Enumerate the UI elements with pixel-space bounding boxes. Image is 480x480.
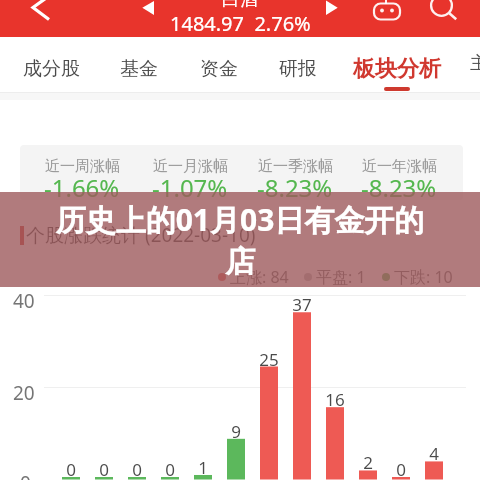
staticText: 上涨: 84	[230, 266, 289, 288]
staticText: 9	[231, 420, 241, 443]
staticText: 4	[429, 442, 439, 465]
staticText: 20	[13, 380, 35, 406]
staticText: 近一年涨幅	[362, 157, 437, 176]
button[interactable]: Next	[318, 0, 350, 22]
staticText: 0	[396, 458, 406, 480]
button[interactable]: 下跌: 10	[382, 266, 453, 288]
staticText: 近一月涨幅	[153, 157, 228, 176]
staticText: 1	[198, 456, 208, 479]
staticText: 主	[470, 52, 480, 75]
staticText: 研报	[279, 57, 317, 81]
staticText: 成分股	[23, 57, 80, 81]
button[interactable]: 上涨: 84	[218, 266, 289, 288]
staticText: 近一周涨幅	[45, 157, 120, 176]
staticText: 白酒	[222, 0, 258, 11]
button[interactable]: 成分股	[9, 37, 93, 93]
staticText: 1484.97 2.76%	[170, 10, 311, 37]
staticText: -1.07%	[152, 171, 228, 204]
button[interactable]: Previous	[132, 0, 164, 22]
staticText: 板块分析	[353, 55, 441, 83]
staticText: 资金	[200, 57, 238, 81]
staticText: 25	[259, 348, 279, 371]
button[interactable]: Assistant	[368, 0, 406, 26]
staticText: 0	[132, 458, 142, 480]
staticText: 0	[165, 458, 175, 480]
staticText: 基金	[120, 57, 158, 81]
staticText: -1.66%	[44, 171, 120, 204]
staticText: 2	[363, 451, 373, 474]
button[interactable]: Back	[16, 0, 66, 30]
button[interactable]: Search	[424, 0, 468, 26]
staticText: 下跌: 10	[394, 266, 453, 288]
staticText: -8.23%	[257, 171, 333, 204]
staticText: 平盘: 1	[316, 266, 366, 288]
button[interactable]: 平盘: 1	[304, 266, 366, 288]
button[interactable]: 资金	[188, 37, 250, 93]
button[interactable]: 基金	[108, 37, 170, 93]
staticText: 0	[99, 458, 109, 480]
staticText: 0	[66, 458, 76, 480]
staticText: 历史上的01月03日有金开的 店	[40, 199, 440, 281]
staticText: 40	[13, 288, 35, 314]
staticText: 0	[20, 470, 31, 480]
staticText: 16	[325, 388, 345, 411]
staticText: 近一季涨幅	[258, 157, 333, 176]
button[interactable]: 研报	[267, 37, 329, 93]
staticText: 个股涨跌统计 (2022-03-10)	[26, 222, 256, 248]
button[interactable]: 主	[470, 51, 480, 75]
staticText: -8.23%	[361, 171, 437, 204]
button[interactable]: 板块分析	[347, 37, 447, 93]
staticText: 37	[292, 293, 312, 316]
